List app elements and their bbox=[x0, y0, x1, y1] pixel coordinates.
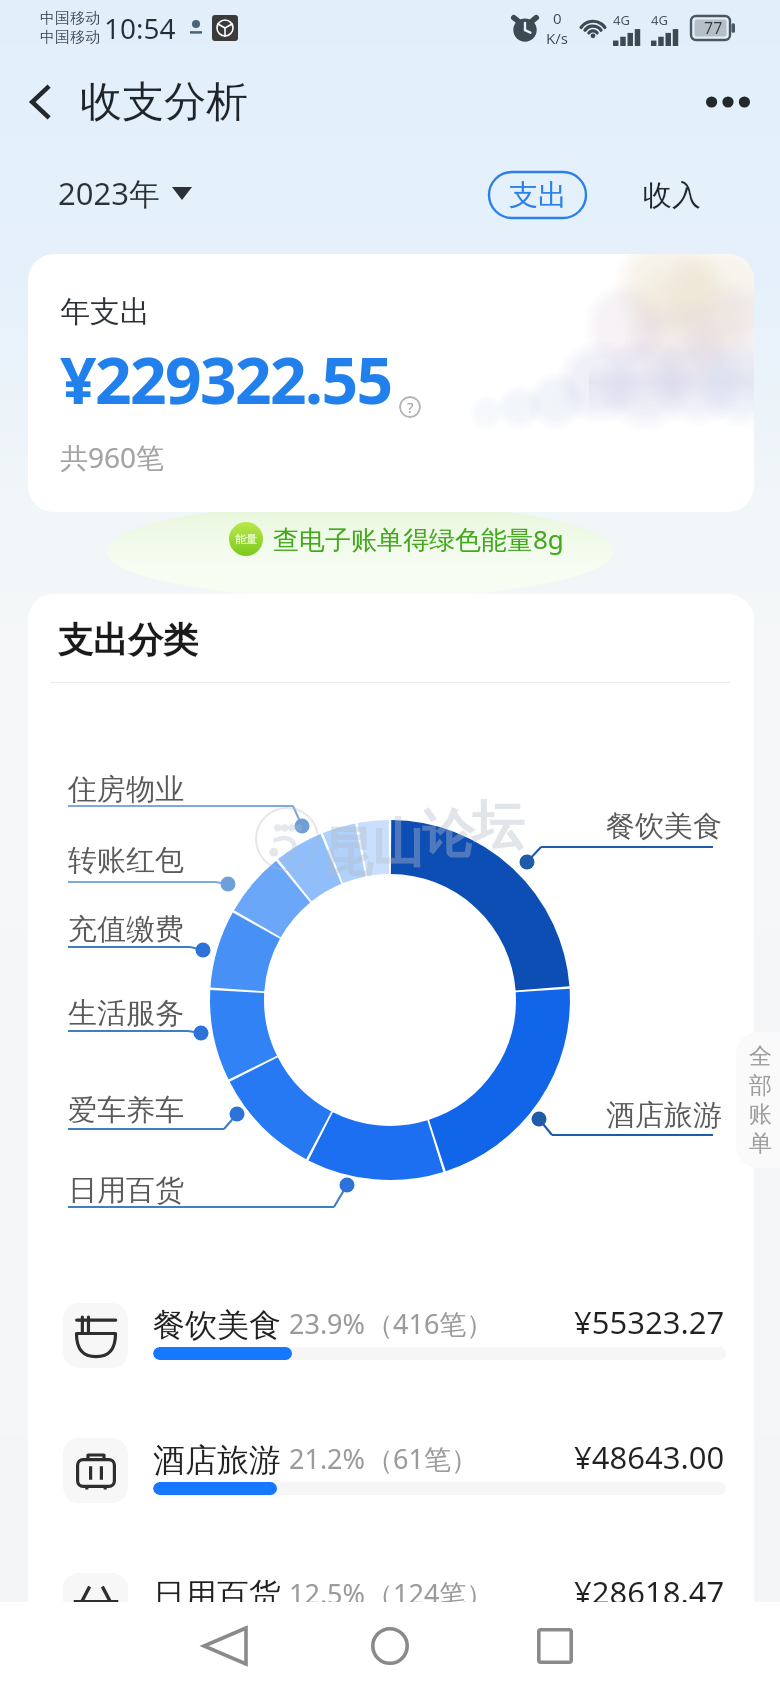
staticText: 中国移动 bbox=[40, 9, 100, 28]
button[interactable]: 收入 bbox=[635, 172, 708, 218]
button[interactable]: 支出 bbox=[489, 172, 586, 218]
staticText: 爱车养车 bbox=[68, 1092, 184, 1129]
button[interactable]: 酒店旅游 bbox=[28, 1403, 754, 1538]
staticText: （61笔） bbox=[366, 1440, 478, 1477]
staticText: ¥55323.27 bbox=[574, 1301, 725, 1343]
staticText: 0 bbox=[553, 8, 562, 28]
button[interactable]: Back bbox=[8, 70, 72, 134]
staticText: 全 bbox=[749, 1042, 772, 1071]
staticText: 餐饮美食 bbox=[606, 808, 722, 845]
staticText: 12.5% bbox=[289, 1575, 366, 1612]
staticText: 昆 bbox=[322, 820, 374, 886]
staticText: 23.9% bbox=[289, 1305, 366, 1342]
button[interactable]: More options bbox=[696, 70, 760, 134]
staticText: ¥229322.55 bbox=[60, 336, 392, 423]
staticText: 21.2% bbox=[289, 1440, 366, 1477]
staticText: 坛 bbox=[472, 793, 524, 859]
staticText: 年支出 bbox=[60, 293, 150, 331]
staticText: 共960笔 bbox=[60, 438, 165, 476]
staticText: 查电子账单得绿色能量8g bbox=[273, 521, 564, 557]
staticText: 酒店旅游 bbox=[153, 1440, 281, 1480]
button[interactable]: Back bbox=[193, 1614, 257, 1678]
staticText: ? bbox=[407, 397, 414, 417]
button[interactable]: 全 bbox=[736, 1032, 780, 1168]
button[interactable]: Home bbox=[358, 1614, 422, 1678]
staticText: 支出分类 bbox=[58, 618, 198, 662]
staticText: ¥28618.47 bbox=[574, 1571, 725, 1613]
staticText: 日用百货 bbox=[68, 1172, 184, 1209]
staticText: 生活服务 bbox=[68, 995, 184, 1032]
staticText: （416笔） bbox=[366, 1305, 494, 1342]
staticText: 能量 bbox=[235, 532, 257, 546]
staticText: 中国移动 bbox=[40, 28, 100, 47]
staticText: （124笔） bbox=[366, 1575, 494, 1612]
staticText: ¥48643.00 bbox=[574, 1436, 725, 1478]
staticText: 收支分析 bbox=[80, 76, 248, 129]
staticText: 日用百货 bbox=[153, 1575, 281, 1615]
staticText: 餐饮美食 bbox=[153, 1305, 281, 1345]
staticText: 2023年 bbox=[58, 172, 160, 214]
staticText: 充值缴费 bbox=[68, 911, 184, 948]
button[interactable]: 餐饮美食 bbox=[28, 1268, 754, 1403]
staticText: 转账红包 bbox=[68, 842, 184, 879]
button[interactable]: 2023年 bbox=[58, 172, 192, 214]
staticText: 单 bbox=[749, 1129, 772, 1158]
staticText: 论 bbox=[422, 802, 474, 868]
staticText: 77 bbox=[704, 17, 723, 39]
button[interactable]: Recent apps bbox=[523, 1614, 587, 1678]
staticText: 10:54 bbox=[104, 9, 176, 47]
staticText: K/s bbox=[546, 28, 569, 48]
staticText: 住房物业 bbox=[68, 771, 184, 808]
staticText: 4G bbox=[613, 11, 630, 29]
button[interactable]: 日用百货 bbox=[28, 1538, 754, 1673]
staticText: 4G bbox=[651, 11, 668, 29]
staticText: 部 bbox=[749, 1071, 772, 1100]
staticText: 账 bbox=[749, 1100, 772, 1129]
staticText: 支出 bbox=[509, 177, 567, 214]
button[interactable]: Help bbox=[399, 396, 421, 418]
staticText: 收入 bbox=[643, 177, 701, 214]
staticText: 酒店旅游 bbox=[606, 1097, 722, 1134]
staticText: 山 bbox=[372, 811, 424, 877]
